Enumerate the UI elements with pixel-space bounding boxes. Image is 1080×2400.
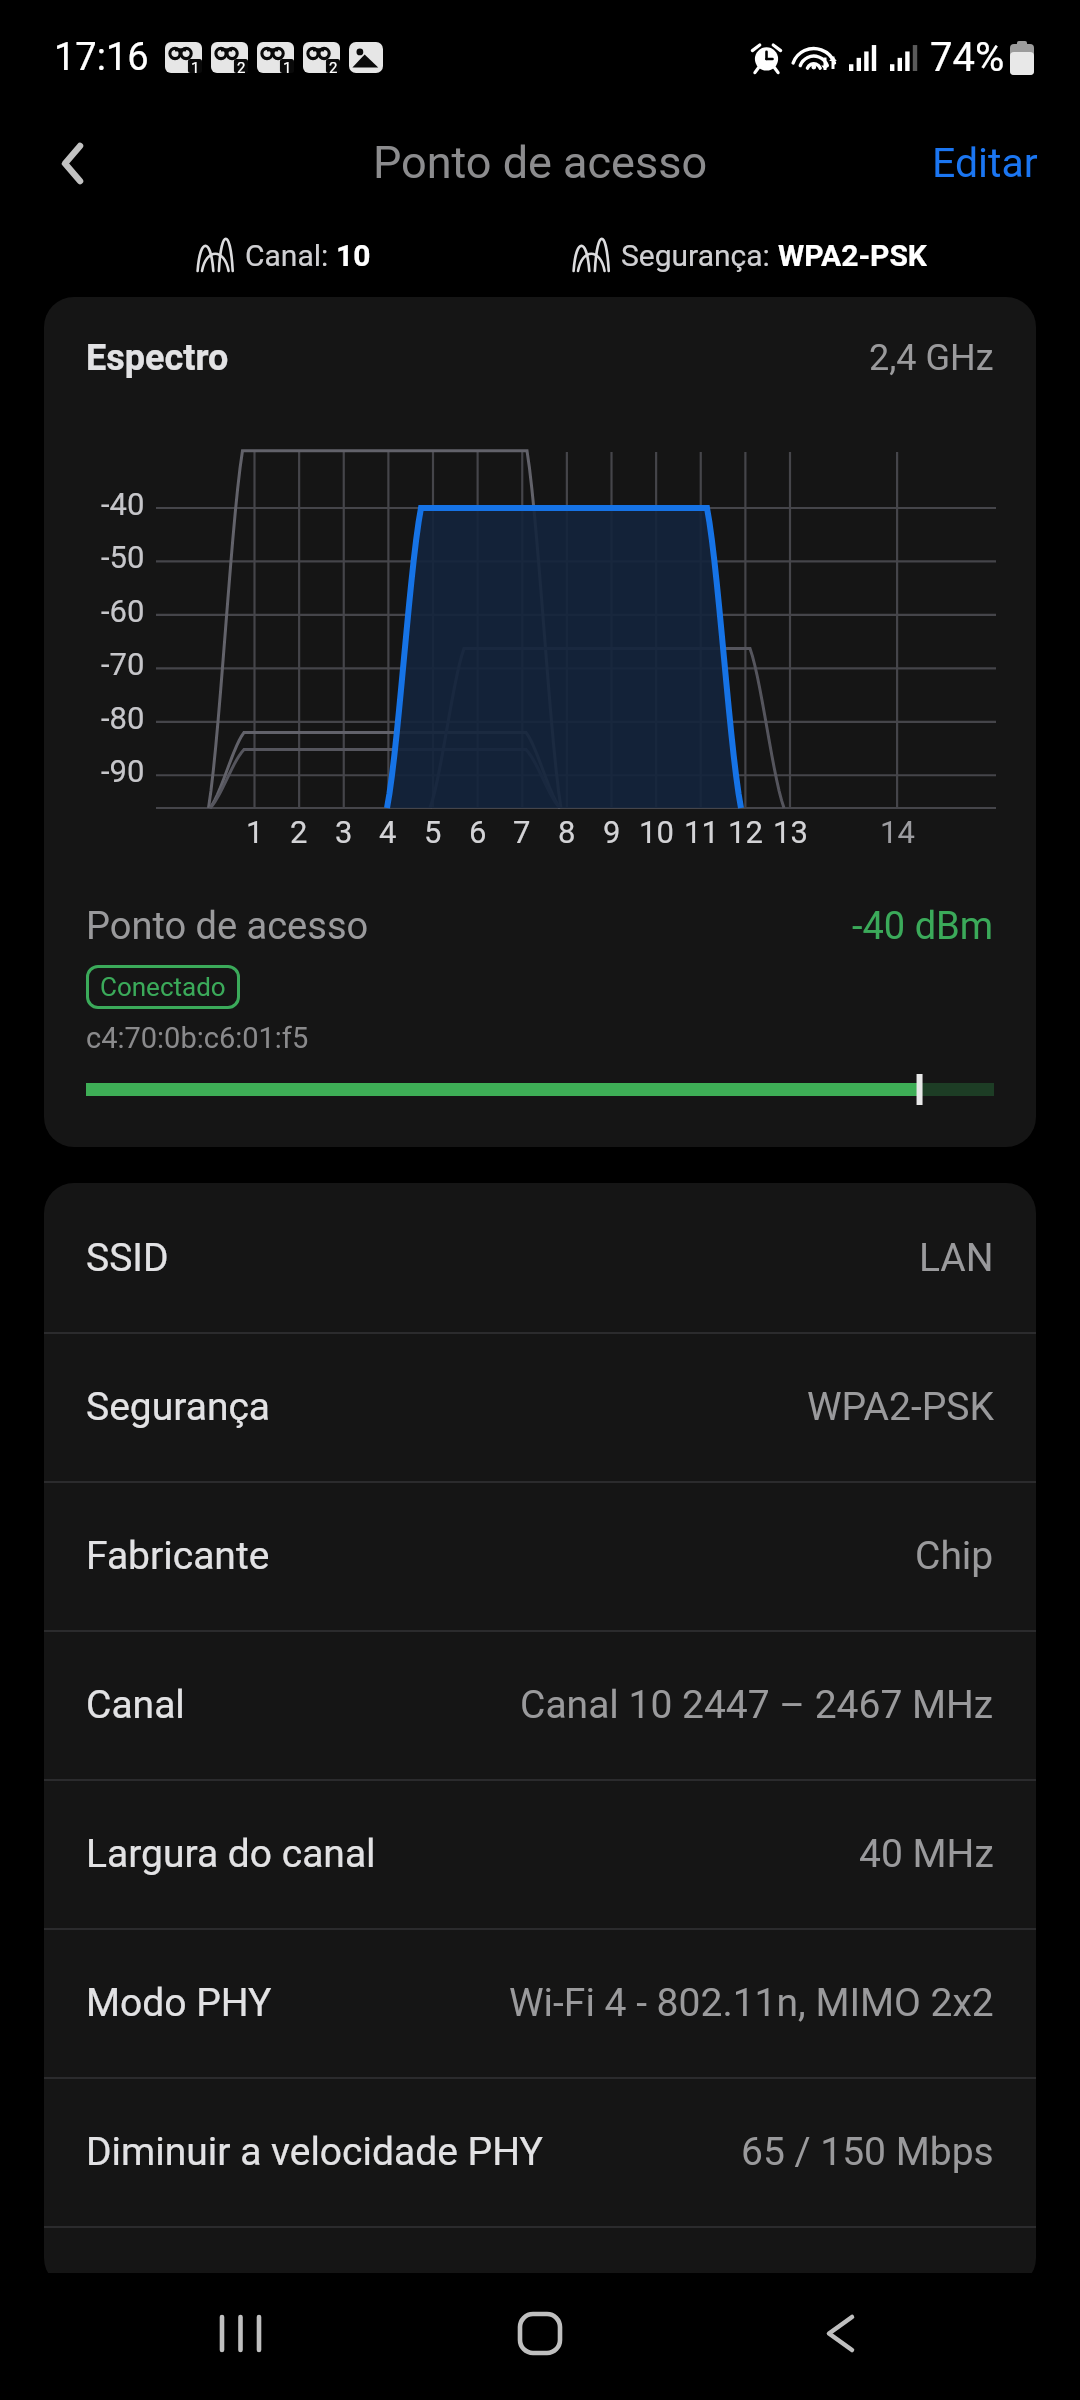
staticText: c4:70:0b:c6:01:f5: [86, 1021, 309, 1055]
staticText: 7: [513, 814, 531, 850]
staticText: -90: [101, 753, 145, 789]
staticText: 2,4 GHz: [869, 337, 994, 379]
staticText: 3: [335, 814, 353, 850]
staticText: Ponto de acesso: [0, 136, 1080, 189]
button[interactable]: SSID: [44, 1183, 1036, 1332]
button[interactable]: Back: [780, 2273, 900, 2393]
staticText: 2: [290, 814, 308, 850]
staticText: LAN: [919, 1235, 994, 1281]
button[interactable]: Fabricante: [44, 1481, 1036, 1630]
button[interactable]: Segurança: [44, 1332, 1036, 1481]
staticText: Ponto de acesso: [86, 904, 369, 949]
staticText: 40 MHz: [859, 1831, 994, 1877]
staticText: 2: [329, 59, 338, 73]
button[interactable]: Canal: [44, 1630, 1036, 1779]
staticText: 8: [558, 814, 576, 850]
staticText: 65 / 150 Mbps: [741, 2129, 994, 2175]
staticText: 10: [336, 238, 371, 273]
staticText: Wi-Fi 4 - 802.11n, MIMO 2x2: [509, 1980, 994, 2026]
staticText: 9: [603, 814, 621, 850]
staticText: -60: [101, 593, 145, 629]
staticText: 17:16: [54, 35, 149, 80]
staticText: Modo PHY: [86, 1980, 272, 2026]
staticText: 13: [773, 814, 808, 850]
button[interactable]: Modo PHY: [44, 1928, 1036, 2077]
staticText: 4: [379, 814, 397, 850]
button[interactable]: Recent apps: [180, 2273, 300, 2393]
staticText: 5: [424, 814, 442, 850]
staticText: Segurança:: [621, 238, 778, 273]
staticText: 11: [684, 814, 719, 850]
staticText: 1: [283, 59, 292, 73]
staticText: Espectro: [86, 337, 229, 379]
staticText: Canal:: [245, 238, 336, 273]
staticText: 12: [728, 814, 763, 850]
staticText: Conectado: [100, 972, 226, 1002]
staticText: -40: [101, 486, 145, 522]
staticText: SSID: [86, 1235, 169, 1281]
staticText: 2: [237, 59, 246, 73]
button[interactable]: Editar: [904, 119, 1080, 207]
staticText: -70: [101, 646, 145, 682]
staticText: Diminuir a velocidade PHY: [86, 2129, 543, 2175]
staticText: Fabricante: [86, 1533, 270, 1579]
staticText: Editar: [932, 139, 1038, 187]
staticText: 10: [639, 814, 674, 850]
staticText: -80: [101, 700, 145, 736]
staticText: 14: [880, 814, 915, 850]
staticText: Canal 10 2447 – 2467 MHz: [520, 1682, 994, 1728]
button[interactable]: Home: [480, 2273, 600, 2393]
button[interactable]: Largura do canal: [44, 1779, 1036, 1928]
staticText: 74%: [930, 34, 1005, 81]
button[interactable]: Back: [24, 115, 120, 211]
staticText: 1: [191, 59, 200, 73]
staticText: Segurança: [86, 1384, 271, 1430]
staticText: Largura do canal: [86, 1831, 376, 1877]
staticText: 6: [469, 814, 487, 850]
button[interactable]: Diminuir a velocidade PHY: [44, 2077, 1036, 2226]
staticText: WPA2-PSK: [807, 1384, 994, 1430]
staticText: Chip: [915, 1533, 994, 1579]
staticText: -40 dBm: [852, 904, 994, 949]
staticText: 1: [246, 814, 264, 850]
staticText: WPA2-PSK: [778, 238, 927, 273]
staticText: Canal: [86, 1682, 185, 1728]
staticText: -50: [101, 539, 145, 575]
